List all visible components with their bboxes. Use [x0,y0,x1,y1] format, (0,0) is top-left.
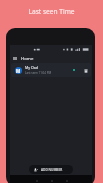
staticText: ADD NUMBER [41,168,63,172]
button[interactable]: ADD NUMBER [29,165,73,174]
staticText: Home [21,55,34,61]
button[interactable]: System navigation [35,179,38,182]
button[interactable]: System navigation [65,179,68,182]
staticText: My Dad [25,65,39,70]
staticText: Last seen Time [0,7,103,16]
button[interactable]: M [11,63,91,77]
staticText: Last seen 11:04 PM [25,71,52,75]
button[interactable]: Menu [11,54,19,62]
button[interactable]: Delete [82,67,89,74]
button[interactable]: System navigation [50,179,53,182]
staticText: M [16,68,21,74]
